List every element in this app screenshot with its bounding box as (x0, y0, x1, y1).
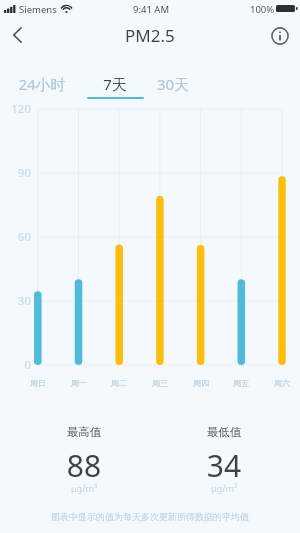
staticText: PM2.5 (125, 24, 175, 47)
button[interactable]: Back (0, 15, 37, 55)
staticText: 30天 (144, 74, 202, 94)
button[interactable]: 最高值 (24, 424, 144, 496)
button[interactable]: 24小时 (13, 63, 71, 101)
staticText: 88 (24, 445, 144, 486)
button[interactable]: 最低值 (164, 424, 284, 496)
staticText: 周日 (22, 378, 54, 388)
staticText: 90 (0, 165, 31, 181)
staticText: 0 (0, 357, 31, 373)
staticText: μg/m³ (164, 482, 284, 494)
staticText: 30 (0, 293, 31, 309)
staticText: 7天 (86, 74, 144, 94)
staticText: 120 (0, 101, 31, 117)
staticText: 最高值 (24, 425, 144, 439)
staticText: 9:41 AM (1, 3, 300, 16)
staticText: 图表中显示的值为每天多次更新所得数据的平均值 (51, 511, 249, 522)
staticText: 周三 (144, 378, 176, 388)
staticText: 60 (0, 229, 31, 245)
staticText: 周六 (266, 378, 298, 388)
staticText: 周五 (225, 378, 257, 388)
button[interactable]: Info (260, 16, 300, 56)
button[interactable]: 7天 (86, 63, 144, 101)
staticText: 34 (164, 445, 284, 486)
staticText: 24小时 (13, 74, 71, 94)
staticText: 100% (250, 3, 275, 16)
staticText: μg/m³ (24, 482, 144, 494)
staticText: 周一 (63, 378, 95, 388)
staticText: 周二 (103, 378, 135, 388)
staticText: 最低值 (164, 425, 284, 439)
button[interactable]: 30天 (144, 63, 202, 101)
staticText: 周四 (185, 378, 217, 388)
staticText: Siemens (19, 3, 57, 16)
